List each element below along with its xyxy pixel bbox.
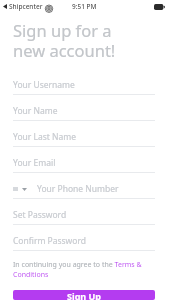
staticText: Your Email — [13, 157, 56, 169]
button[interactable]: Your Last Name — [13, 128, 155, 147]
staticText: Your Phone Number — [37, 183, 119, 195]
button[interactable]: Set Password — [13, 206, 155, 225]
staticText: Your Username — [13, 79, 75, 91]
button[interactable]: Select country code — [13, 180, 155, 199]
button[interactable]: Your Email — [13, 154, 155, 173]
staticText: Sign Up — [67, 290, 102, 300]
staticText: Confirm Password — [13, 235, 86, 247]
staticText: Sign up for a new account! — [13, 19, 116, 62]
staticText: Set Password — [13, 209, 67, 221]
button[interactable]: Sign Up — [13, 290, 155, 300]
staticText: Shipcenter — [9, 2, 43, 11]
button[interactable]: Confirm Password — [13, 232, 155, 251]
button[interactable]: In continuing you agree to the Terms & C… — [13, 260, 155, 280]
staticText: Your Name — [13, 105, 58, 117]
button[interactable]: Your Username — [13, 76, 155, 95]
staticText: 9:51 PM — [72, 2, 97, 11]
other: Select country code — [13, 187, 27, 191]
staticText: Your Last Name — [13, 131, 77, 143]
button[interactable]: Your Name — [13, 102, 155, 121]
